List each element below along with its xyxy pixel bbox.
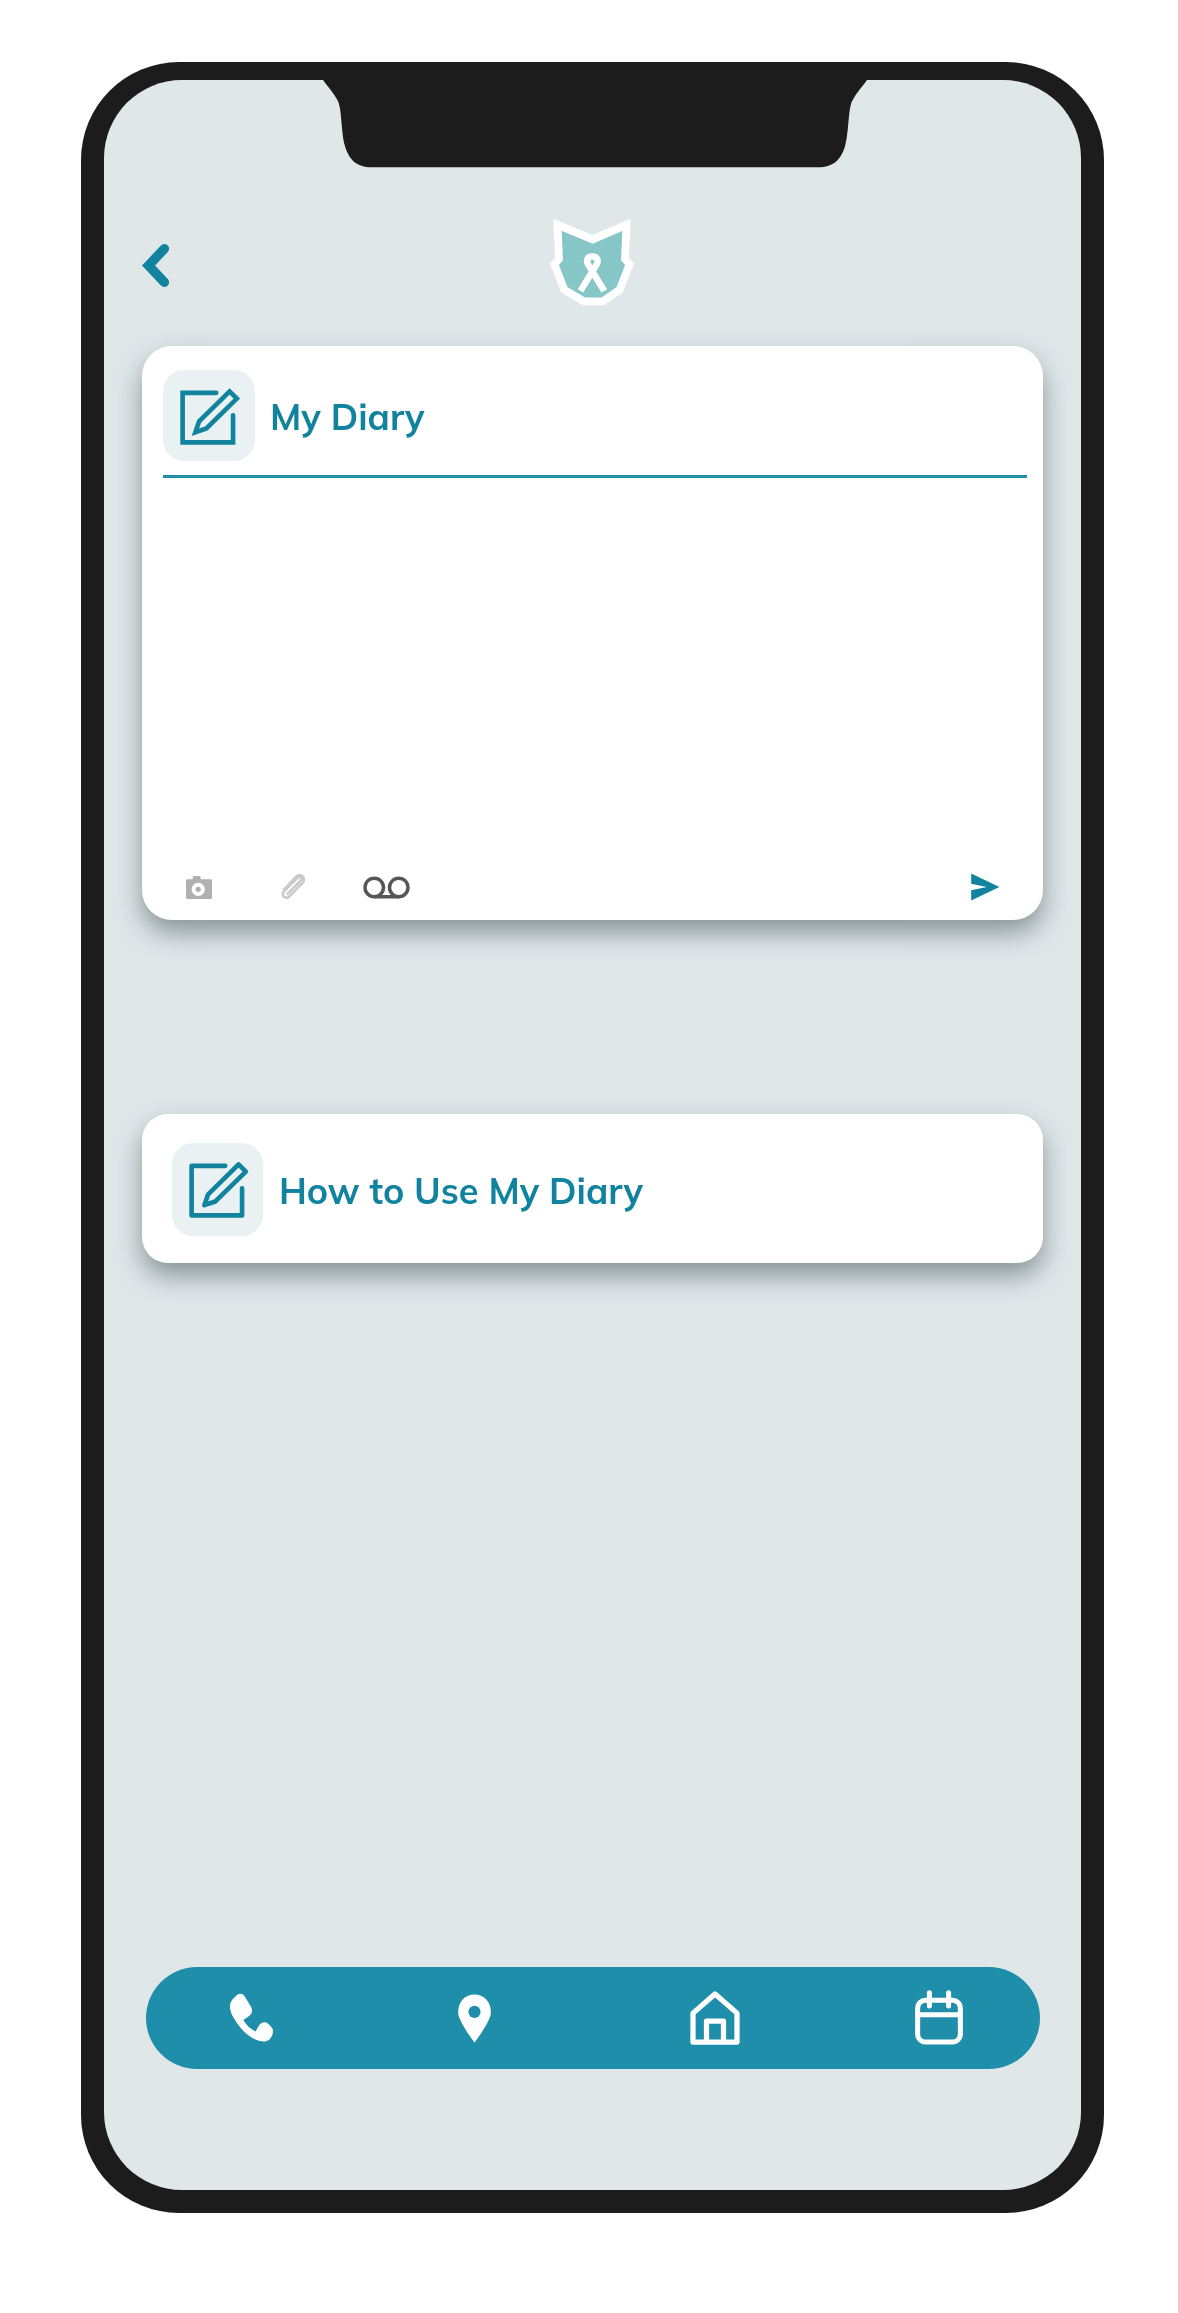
button[interactable]: Attach file: [259, 851, 325, 920]
staticText: How to Use My Diary: [279, 1168, 644, 1213]
button[interactable]: Send: [950, 854, 1020, 920]
button[interactable]: Calendar: [874, 1967, 1003, 2069]
button[interactable]: Add photo: [166, 856, 232, 918]
button[interactable]: Location: [410, 1967, 539, 2069]
button[interactable]: Call: [183, 1967, 314, 2069]
button[interactable]: Home: [650, 1967, 779, 2069]
button[interactable]: Back: [120, 229, 192, 301]
button[interactable]: Voice note: [353, 856, 419, 918]
button[interactable]: How to Use My Diary: [142, 1114, 1043, 1263]
staticText: My Diary: [270, 394, 425, 439]
